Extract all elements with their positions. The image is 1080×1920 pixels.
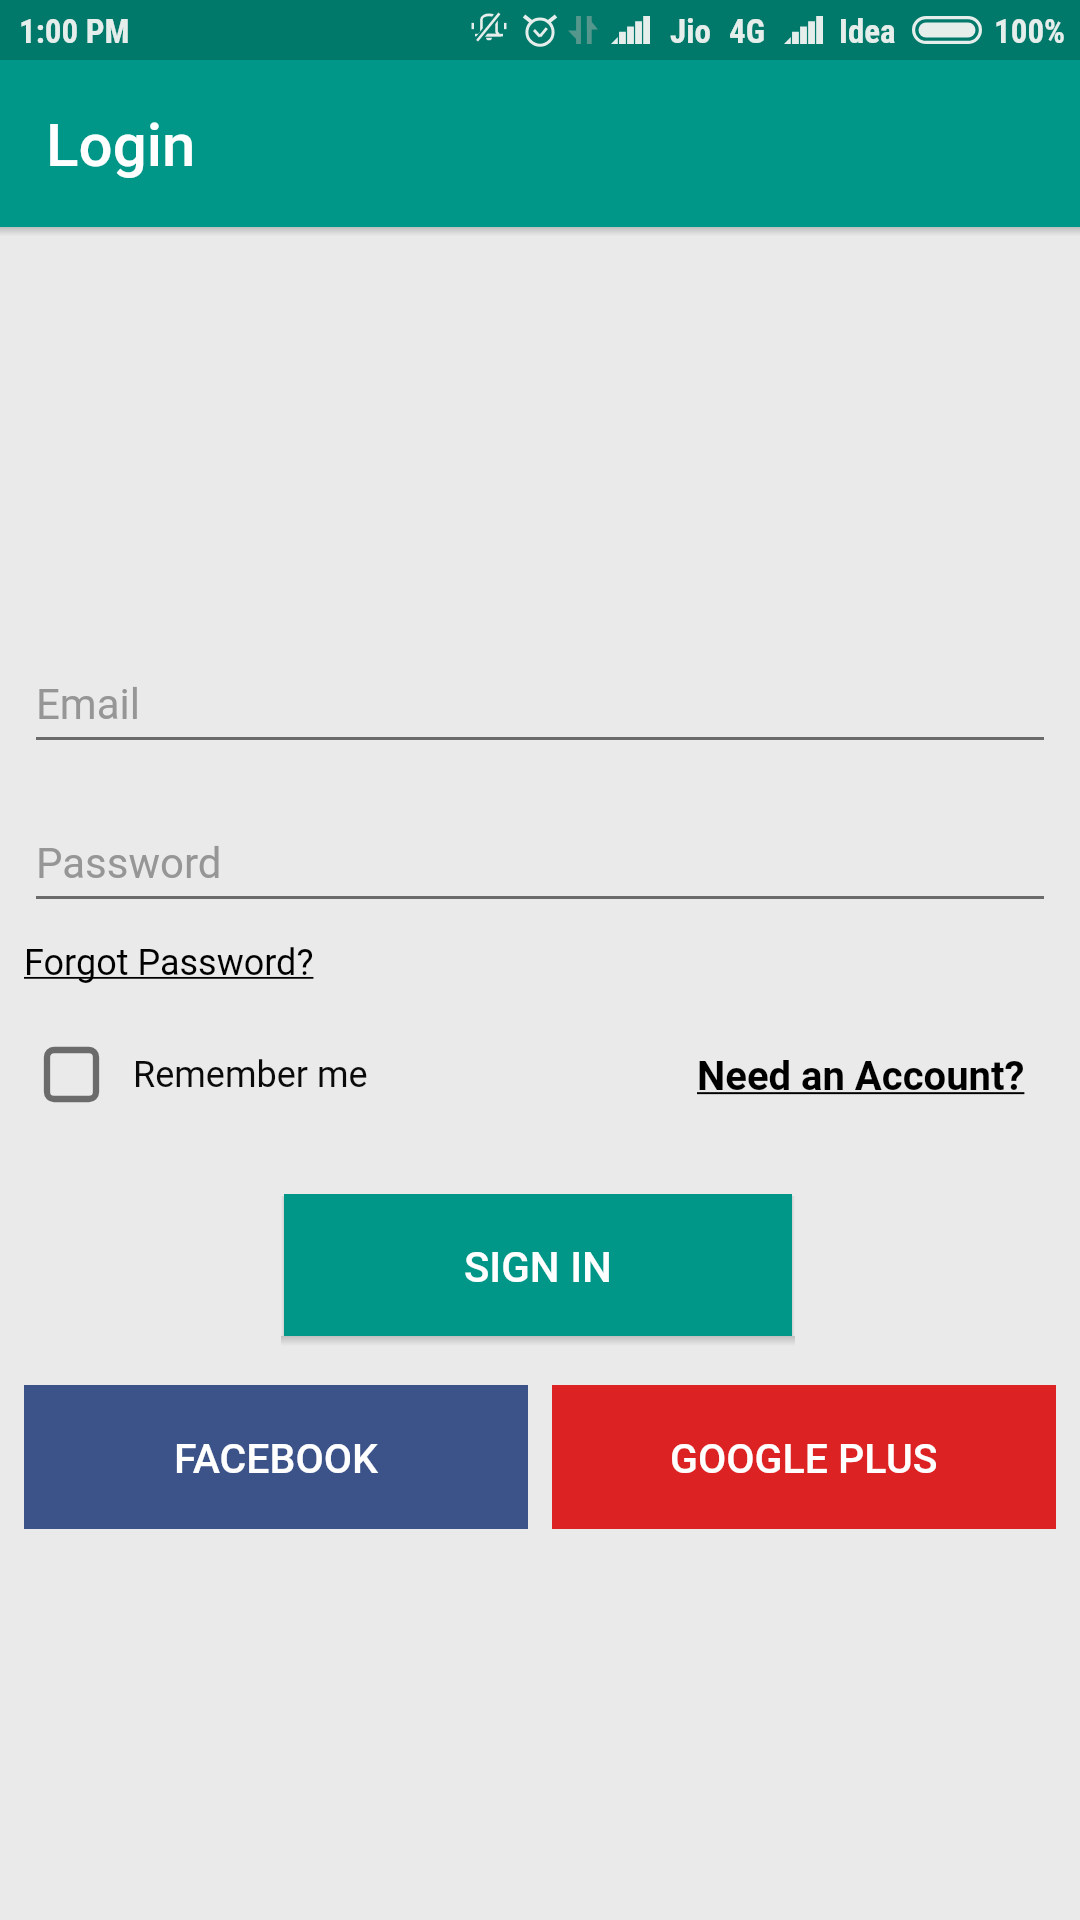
button[interactable]: FACEBOOK [24,1385,528,1529]
other: Mobile data [568,16,598,44]
staticText: 1:00 PM [19,12,130,51]
button[interactable]: GOOGLE PLUS [552,1385,1056,1529]
other: Alarm set [523,12,557,45]
other: Battery 100 percent [912,16,982,44]
other: Signal strength [611,16,650,44]
other: Signal strength [784,16,823,44]
button[interactable]: Email [36,680,1044,740]
button[interactable]: Forgot Password? [24,942,314,984]
staticText: Password [36,839,222,888]
button[interactable]: Remember me checkbox [44,1047,368,1102]
staticText: SIGN IN [464,1243,612,1292]
staticText: Jio [670,12,711,51]
button[interactable]: Password [36,839,1044,899]
staticText: 100% [994,12,1066,51]
staticText: Remember me [133,1054,368,1096]
staticText: Forgot Password? [24,942,314,984]
other: Remember me checkbox [44,1047,99,1102]
staticText: FACEBOOK [174,1435,378,1483]
staticText: Email [36,680,140,729]
staticText: Idea [839,12,896,51]
button[interactable]: SIGN IN [284,1194,792,1336]
other: Silent mode [471,11,507,44]
button[interactable]: Need an Account? [697,1053,1025,1100]
staticText: Need an Account? [697,1053,1025,1100]
staticText: GOOGLE PLUS [670,1435,938,1483]
staticText: 4G [729,12,766,51]
staticText: Login [46,110,196,180]
